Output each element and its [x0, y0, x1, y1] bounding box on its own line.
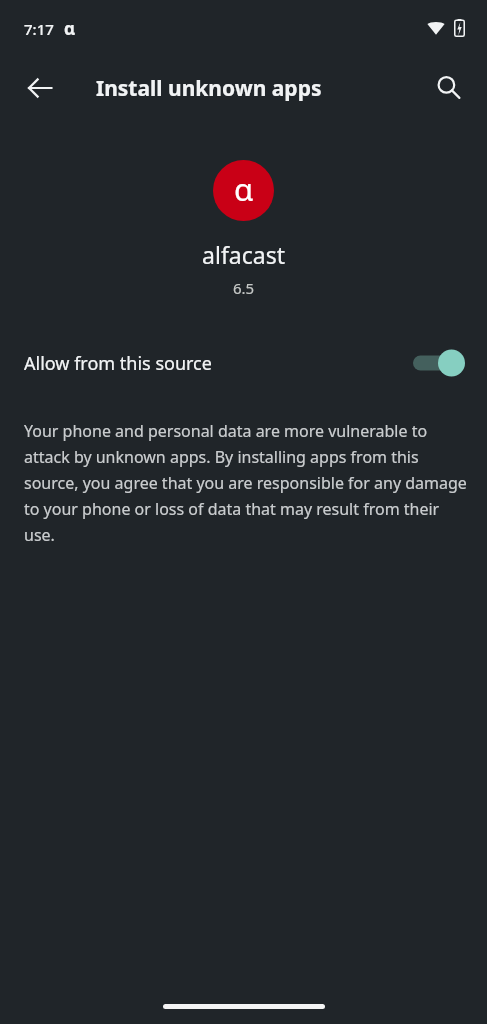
button[interactable]: Back	[16, 64, 64, 112]
staticText: α	[64, 17, 76, 40]
staticText: 6.5	[0, 278, 487, 298]
staticText: 7:17	[24, 19, 54, 39]
staticText: Install unknown apps	[96, 74, 322, 103]
staticText: Your phone and personal data are more vu…	[24, 420, 471, 546]
staticText: alfacast	[0, 239, 487, 270]
staticText: Allow from this source	[24, 351, 212, 376]
button[interactable]: Allow from this source toggle	[413, 348, 465, 378]
staticText: α	[234, 168, 254, 210]
button[interactable]: Allow from this source	[0, 334, 487, 392]
button[interactable]: Search	[425, 64, 473, 112]
